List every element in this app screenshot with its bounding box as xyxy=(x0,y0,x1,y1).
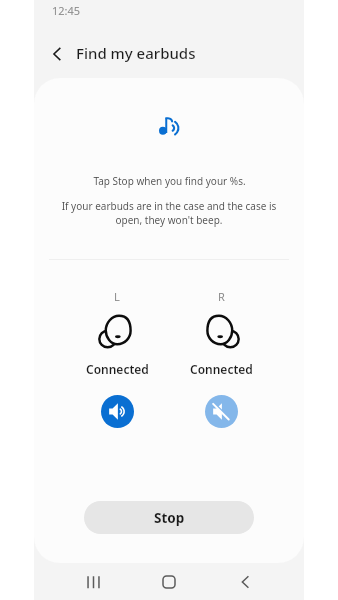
button[interactable]: Navigate up xyxy=(42,39,72,69)
staticText: Tap Stop when you find your %s. xyxy=(93,174,246,188)
button[interactable]: Back xyxy=(228,565,262,599)
button[interactable]: Recents xyxy=(76,565,110,599)
staticText: Stop xyxy=(154,509,185,527)
staticText: If your earbuds are in the case and the … xyxy=(56,199,282,227)
button[interactable]: Home xyxy=(152,565,186,599)
staticText: R xyxy=(218,289,225,304)
staticText: 12:45 xyxy=(52,3,81,18)
staticText: Connected xyxy=(190,361,253,377)
staticText: Find my earbuds xyxy=(76,43,196,63)
staticText: L xyxy=(114,289,120,304)
button[interactable]: Unmute earbud xyxy=(205,395,238,428)
staticText: Connected xyxy=(86,361,149,377)
button[interactable]: Stop xyxy=(84,501,254,534)
button[interactable]: Mute earbud xyxy=(101,395,134,428)
